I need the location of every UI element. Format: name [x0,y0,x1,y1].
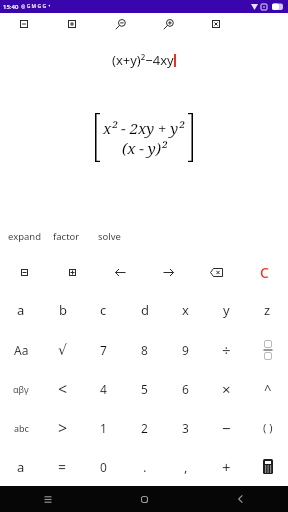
staticText: (x+y)²−4xy [112,51,174,69]
staticText: ÷ [222,340,231,360]
staticText: solve [98,230,121,243]
button[interactable]: = [42,447,83,486]
button[interactable] [247,447,288,486]
button[interactable]: factor [53,230,80,243]
staticText: 8 [141,342,148,358]
staticText: . [143,458,147,476]
staticText: factor [53,230,80,243]
button[interactable]: . [124,447,165,486]
staticText: 1 [100,420,107,436]
staticText: 6 [182,381,189,397]
button[interactable] [0,13,48,35]
staticText: 0 [100,459,107,475]
button[interactable] [144,13,192,35]
button[interactable]: expand [8,230,42,243]
button[interactable]: abc [0,408,42,447]
staticText: x² − 2xy + y² [103,118,185,138]
staticText: > [58,417,68,439]
staticText: 2 [141,420,148,436]
button[interactable]: ^ [247,369,288,408]
staticText: αβγ [13,383,29,395]
staticText: × [222,379,231,399]
button[interactable]: 4 [83,369,124,408]
staticText: a [17,458,25,476]
button[interactable]: z [247,290,288,330]
button[interactable]: > [42,408,83,447]
button[interactable] [247,330,288,369]
staticText: − [222,418,231,438]
staticText: ◎ G M G G • [21,3,51,10]
button[interactable]: , [165,447,206,486]
staticText: + [222,457,231,477]
button[interactable]: 3 [165,408,206,447]
button[interactable]: 2 [124,408,165,447]
staticText: < [58,378,68,400]
staticText: z [264,301,271,319]
staticText: b [59,301,67,319]
staticText: d [141,301,149,319]
button[interactable]: y [206,290,247,330]
staticText: 5 [141,381,148,397]
button[interactable]: 8 [124,330,165,369]
button[interactable]: ( ) [247,408,288,447]
button[interactable]: C [240,255,288,290]
button[interactable]: d [124,290,165,330]
button[interactable]: + [206,447,247,486]
staticText: c [100,301,107,319]
button[interactable] [192,486,288,512]
staticText: a [17,301,25,319]
button[interactable] [0,486,96,512]
staticText: C [260,263,269,282]
button[interactable] [0,255,48,290]
button[interactable]: × [206,369,247,408]
button[interactable]: a [0,290,42,330]
button[interactable]: solve [98,230,121,243]
staticText: ^ [264,380,272,398]
button[interactable] [96,255,144,290]
button[interactable]: 1 [83,408,124,447]
button[interactable]: b [42,290,83,330]
button[interactable]: 7 [83,330,124,369]
staticText: ( ) [263,420,273,435]
staticText: , [184,458,188,476]
button[interactable]: x [165,290,206,330]
button[interactable] [192,255,240,290]
button[interactable]: 5 [124,369,165,408]
button[interactable]: < [42,369,83,408]
button[interactable]: Aa [0,330,42,369]
button[interactable] [96,13,144,35]
staticText: (x − y)² [122,138,167,158]
button[interactable] [48,13,96,35]
button[interactable]: αβγ [0,369,42,408]
staticText: 7 [100,342,107,358]
staticText: 15:40 [3,3,19,11]
staticText: Aa [14,342,29,358]
button[interactable] [48,255,96,290]
staticText: x [182,301,189,319]
button[interactable]: 9 [165,330,206,369]
staticText: = [58,457,67,476]
staticText: 3 [182,420,189,436]
button[interactable]: √ [42,330,83,369]
button[interactable] [144,255,192,290]
button[interactable]: a [0,447,42,486]
button[interactable]: 6 [165,369,206,408]
staticText: abc [14,422,29,434]
button[interactable]: 0 [83,447,124,486]
staticText: 9 [182,342,189,358]
button[interactable]: c [83,290,124,330]
button[interactable] [96,486,192,512]
staticText: 4 [100,381,107,397]
staticText: y [223,301,230,319]
staticText: expand [8,230,42,243]
button[interactable]: ÷ [206,330,247,369]
button[interactable]: − [206,408,247,447]
staticText: √ [58,342,67,358]
button[interactable] [192,13,240,35]
